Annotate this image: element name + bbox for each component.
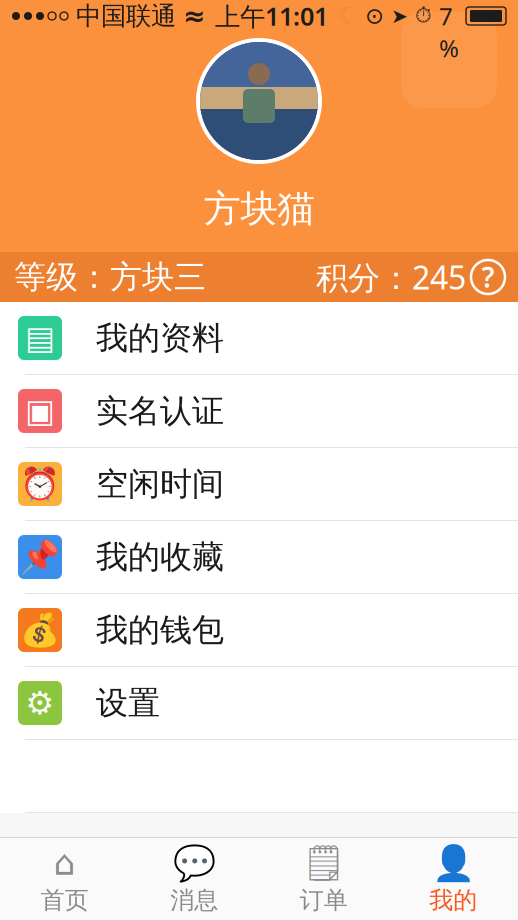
staticText: 设置 (96, 683, 160, 723)
staticText: 积分：245 (316, 256, 466, 298)
staticText: ⏱ (415, 6, 432, 26)
staticText: ≈ (183, 1, 205, 31)
staticText: 我的钱包 (96, 610, 224, 650)
staticText: 我的收藏 (96, 537, 224, 577)
button[interactable]: ▣ (0, 375, 518, 448)
staticText: 中国联通 (76, 0, 176, 31)
staticText: 我的资料 (96, 318, 224, 358)
button[interactable]: 👤 (388, 838, 518, 920)
staticText: 77% (439, 0, 459, 64)
staticText: ▣ (25, 393, 55, 429)
staticText: 等级：方块三 (14, 257, 206, 297)
button[interactable]: ⌂ (0, 838, 129, 920)
button[interactable]: ▤ (0, 302, 518, 375)
staticText: 首页 (41, 885, 89, 915)
button[interactable]: ⏰ (0, 448, 518, 521)
staticText: 🗒 (302, 843, 346, 883)
staticText: ☾ (338, 3, 358, 29)
staticText: ⊙ (365, 3, 384, 29)
button[interactable]: 积分说明 (466, 255, 510, 299)
button[interactable]: 📌 (0, 521, 518, 594)
staticText: ▤ (25, 320, 55, 356)
staticText: 方块猫 (203, 186, 314, 232)
staticText: 上午11:01 (215, 0, 328, 33)
staticText: 📌 (20, 539, 60, 575)
staticText: 💰 (20, 612, 60, 648)
button[interactable]: 💰 (0, 594, 518, 667)
button[interactable]: 💬 (129, 838, 259, 920)
staticText: 消息 (170, 886, 218, 915)
button[interactable] (196, 32, 322, 164)
staticText: ? (481, 258, 494, 296)
staticText: 订单 (300, 886, 348, 915)
button[interactable]: 🗒 (259, 838, 388, 920)
staticText: ⚙ (25, 685, 54, 721)
staticText: 👤 (432, 843, 475, 883)
staticText: 实名认证 (96, 391, 224, 431)
staticText: ⏰ (20, 466, 60, 502)
staticText: ⌂ (54, 843, 76, 882)
staticText: 空闲时间 (96, 464, 224, 504)
staticText: 我的 (429, 886, 477, 915)
staticText: ➤ (391, 5, 408, 27)
staticText: 💬 (173, 843, 216, 883)
button[interactable]: ⚙ (0, 667, 518, 740)
